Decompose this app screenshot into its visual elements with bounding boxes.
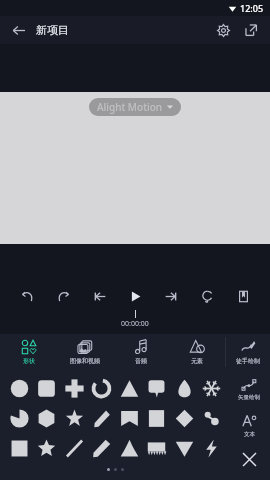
button[interactable]: Shape 19 [88, 435, 114, 461]
staticText: 徒手绘制 [236, 357, 260, 365]
button[interactable]: Bookmark [230, 283, 256, 309]
staticText: 音频 [135, 357, 147, 365]
button[interactable]: Shape 15 [198, 405, 224, 431]
button[interactable]: 音频 [113, 334, 169, 370]
staticText: 元素 [191, 357, 203, 365]
button[interactable]: Alight Motion [89, 98, 181, 116]
staticText: 图像和视频 [70, 357, 100, 365]
button[interactable]: Play [122, 283, 148, 309]
button[interactable]: Skip to end [158, 283, 184, 309]
button[interactable]: Shape 10 [61, 405, 87, 431]
button[interactable]: Shape 4 [116, 375, 142, 401]
button[interactable]: Back [8, 20, 28, 40]
button[interactable]: Shape 23 [198, 435, 224, 461]
staticText: 12:05 [240, 2, 264, 14]
staticText: 00:00:00 [121, 319, 149, 329]
button[interactable]: 徒手绘制 [226, 334, 270, 370]
button[interactable]: Shape 5 [143, 375, 169, 401]
button[interactable]: Shape 13 [143, 405, 169, 431]
button[interactable]: Shape 8 [6, 405, 32, 431]
button[interactable]: 矢量绘制 [228, 370, 270, 408]
button[interactable]: Shape 20 [116, 435, 142, 461]
button[interactable]: Shape 18 [61, 435, 87, 461]
button[interactable]: Shape 14 [171, 405, 197, 431]
button[interactable]: Shape 3 [88, 375, 114, 401]
button[interactable]: Undo [14, 283, 40, 309]
staticText: 新项目 [36, 23, 69, 37]
button[interactable]: Shape 1 [33, 375, 59, 401]
button[interactable]: Redo [50, 283, 76, 309]
button[interactable]: 图像和视频 [57, 334, 113, 370]
button[interactable]: Shape 6 [171, 375, 197, 401]
button[interactable]: Settings [212, 19, 234, 41]
button[interactable]: 文本 [228, 408, 270, 444]
staticText: 文本 [244, 431, 255, 438]
button[interactable]: Shape 21 [143, 435, 169, 461]
button[interactable]: Shape 17 [33, 435, 59, 461]
button[interactable]: Shape 2 [61, 375, 87, 401]
button[interactable]: Close [228, 444, 270, 474]
staticText: 矢量绘制 [238, 394, 260, 401]
button[interactable]: Shape 22 [171, 435, 197, 461]
button[interactable]: Loop [194, 283, 220, 309]
button[interactable]: Shape 11 [88, 405, 114, 431]
button[interactable]: Shape 16 [6, 435, 32, 461]
button[interactable]: Shape 9 [33, 405, 59, 431]
button[interactable]: Export [240, 19, 262, 41]
staticText: 形状 [23, 357, 35, 365]
button[interactable]: 元素 [169, 334, 225, 370]
button[interactable]: Shape 7 [198, 375, 224, 401]
button[interactable]: Skip to start [86, 283, 112, 309]
staticText: Alight Motion [97, 100, 163, 114]
button[interactable]: 形状 [0, 334, 57, 370]
button[interactable]: Shape 0 [6, 375, 32, 401]
button[interactable]: Shape 12 [116, 405, 142, 431]
